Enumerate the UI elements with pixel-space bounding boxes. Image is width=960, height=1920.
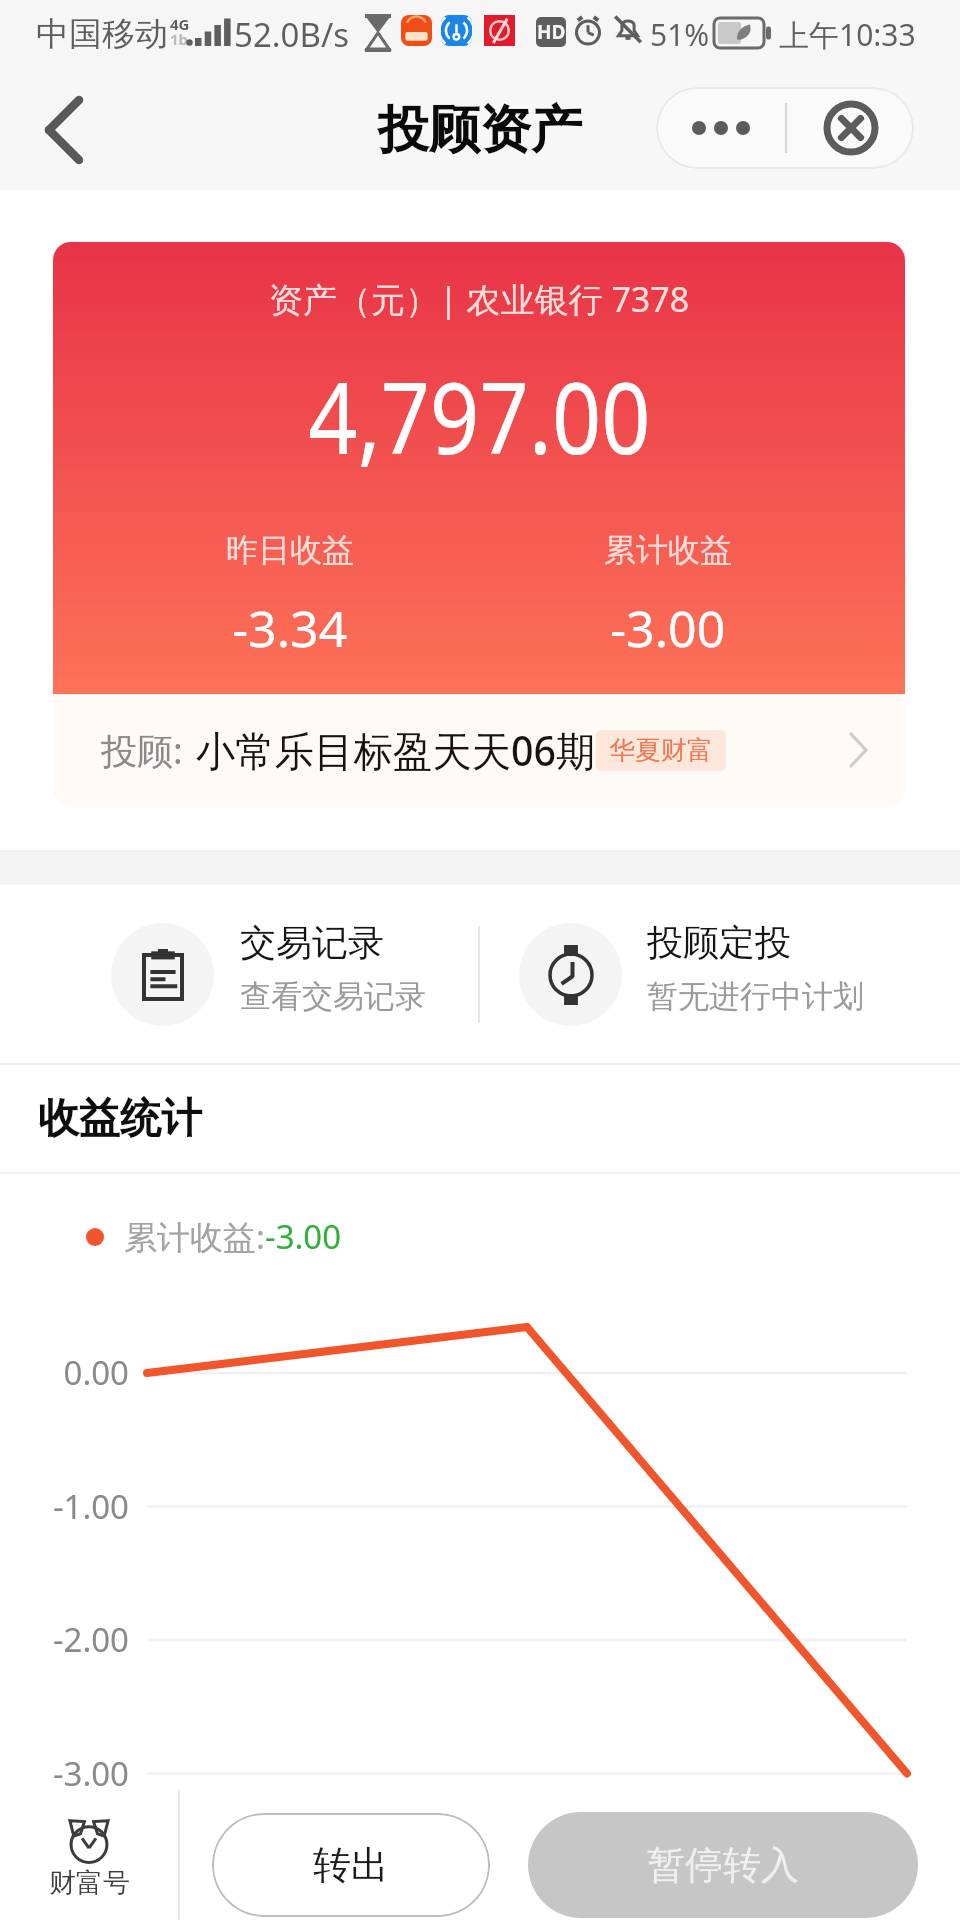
staticText: 交易记录 bbox=[240, 920, 384, 965]
staticText: 0.00 bbox=[0, 1350, 129, 1395]
staticText: 中国移动 bbox=[36, 13, 168, 55]
button[interactable]: 财富号 bbox=[0, 1790, 178, 1920]
button[interactable]: 交易记录 bbox=[0, 885, 478, 1063]
staticText: 暂无进行中计划 bbox=[647, 977, 864, 1016]
staticText: 昨日收益 bbox=[226, 530, 354, 570]
button[interactable]: More options bbox=[656, 87, 785, 169]
staticText: -3.00 bbox=[610, 594, 726, 662]
staticText: 累计收益: bbox=[124, 1214, 265, 1259]
staticText: 收益统计 bbox=[38, 1093, 202, 1145]
staticText: 财富号 bbox=[49, 1866, 130, 1900]
button[interactable]: 投顾: bbox=[53, 694, 905, 806]
button[interactable]: Back bbox=[20, 85, 110, 175]
staticText: 转出 bbox=[313, 1841, 389, 1889]
staticText: 资产（元）| 农业银行 7378 bbox=[269, 276, 690, 322]
staticText: -2.00 bbox=[0, 1617, 129, 1662]
staticText: -3.00 bbox=[0, 1751, 129, 1796]
staticText: 上午10:33 bbox=[779, 14, 916, 55]
staticText: 投顾: bbox=[101, 726, 183, 775]
staticText: 4,797.00 bbox=[308, 349, 651, 482]
button[interactable]: 暂停转入 bbox=[528, 1812, 918, 1918]
staticText: 投顾资产 bbox=[378, 98, 582, 162]
staticText: -3.34 bbox=[232, 594, 348, 662]
staticText: 华夏财富 bbox=[609, 734, 713, 767]
staticText: 4G bbox=[170, 14, 190, 34]
button[interactable]: 投顾定投 bbox=[480, 885, 960, 1063]
staticText: 查看交易记录 bbox=[240, 977, 426, 1016]
staticText: 1b bbox=[170, 29, 189, 49]
button[interactable]: Close bbox=[787, 87, 914, 169]
staticText: 投顾定投 bbox=[647, 920, 791, 965]
staticText: 52.0B/s bbox=[234, 12, 350, 57]
staticText: 小常乐目标盈天天06期 bbox=[196, 722, 595, 778]
staticText: -1.00 bbox=[0, 1484, 129, 1529]
staticText: -3.00 bbox=[265, 1214, 342, 1259]
staticText: HD bbox=[537, 19, 566, 45]
staticText: 51% bbox=[650, 14, 710, 55]
button[interactable]: 转出 bbox=[212, 1813, 490, 1917]
staticText: 暂停转入 bbox=[647, 1841, 799, 1889]
staticText: 累计收益 bbox=[604, 530, 732, 570]
